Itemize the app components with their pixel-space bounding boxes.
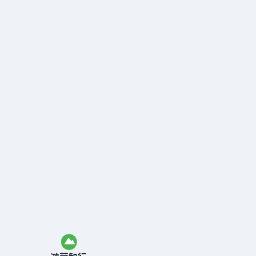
staticText: 鸿蒙智行 — [50, 251, 87, 256]
button[interactable]: 鸿蒙智行 — [50, 234, 87, 256]
